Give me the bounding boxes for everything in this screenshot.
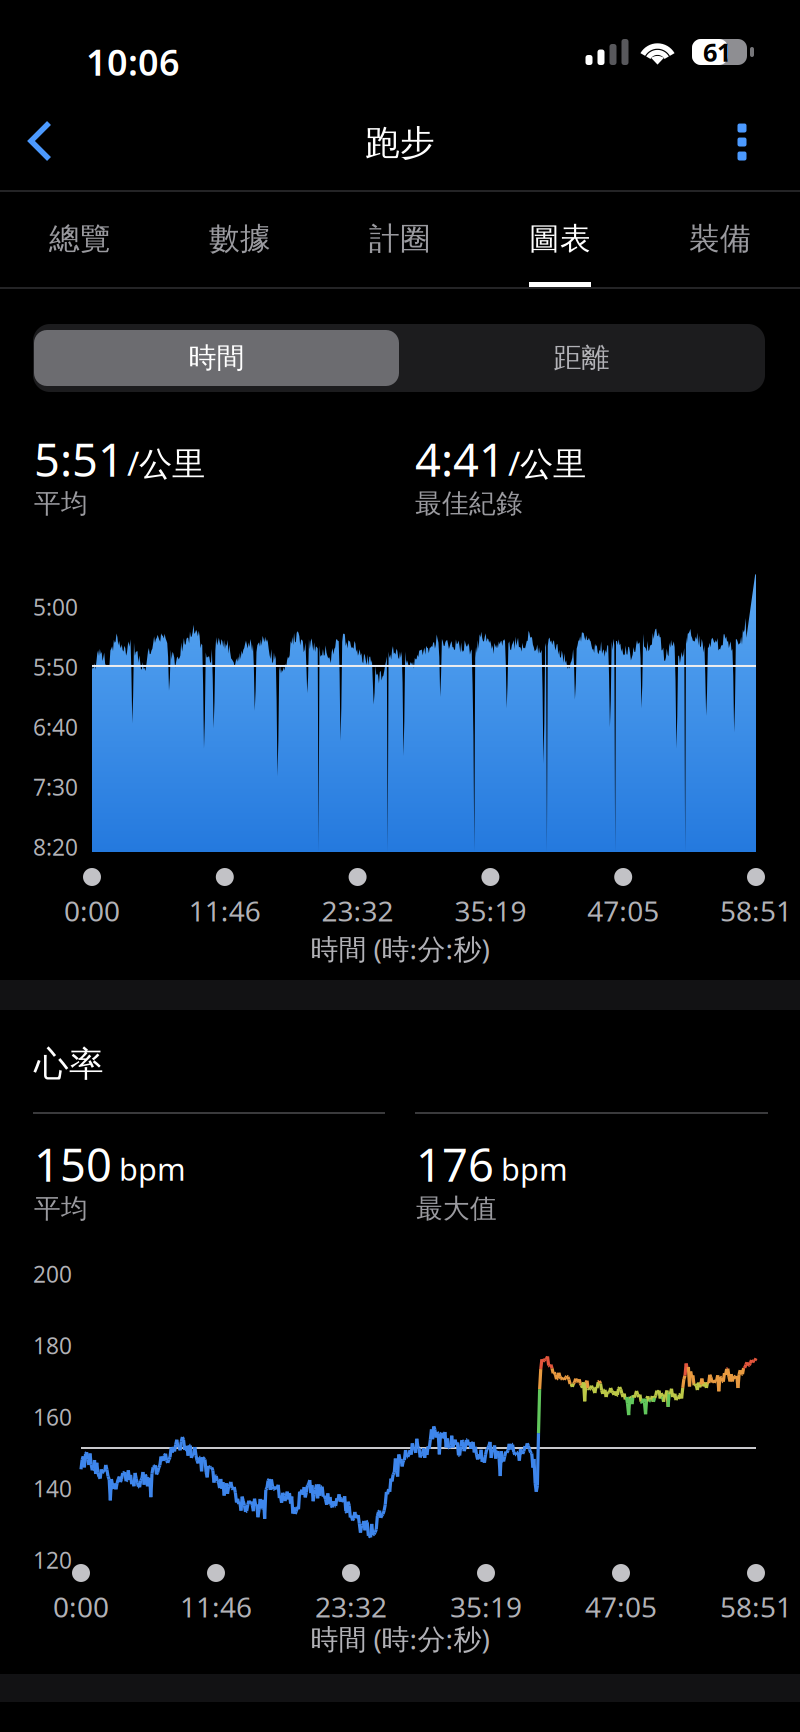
button[interactable]: 更多選項 — [709, 109, 783, 177]
staticText: 時間 (時:分:秒) — [310, 1620, 489, 1657]
staticText: 7:30 — [33, 772, 78, 802]
staticText: 時間 (時:分:秒) — [310, 930, 489, 967]
button[interactable]: 距離 — [399, 330, 764, 386]
staticText: 時間 — [188, 341, 244, 375]
staticText: 平均 — [34, 1192, 88, 1225]
staticText: 總覽 — [49, 220, 111, 258]
staticText: 47:05 — [587, 892, 659, 929]
staticText: bpm — [119, 1148, 186, 1189]
staticText: 裝備 — [689, 220, 751, 258]
button[interactable]: 返回 — [17, 109, 91, 177]
button[interactable]: 圖表 — [480, 192, 640, 287]
staticText: 58:51 — [720, 1588, 792, 1625]
staticText: 4:41 — [415, 429, 505, 489]
button[interactable]: 數據 — [160, 192, 320, 287]
staticText: 35:19 — [450, 1588, 522, 1625]
staticText: 160 — [33, 1402, 72, 1432]
staticText: 58:51 — [720, 892, 792, 929]
staticText: 200 — [33, 1259, 72, 1289]
staticText: 11:46 — [180, 1588, 252, 1625]
staticText: 176 — [416, 1134, 494, 1194]
staticText: 0:00 — [64, 892, 120, 929]
staticText: 11:46 — [189, 892, 261, 929]
staticText: 最大值 — [416, 1192, 497, 1225]
staticText: /公里 — [508, 441, 586, 485]
staticText: 120 — [33, 1545, 72, 1575]
staticText: 6:40 — [33, 712, 78, 742]
staticText: bpm — [501, 1148, 568, 1189]
staticText: 180 — [33, 1330, 72, 1361]
staticText: 140 — [33, 1473, 72, 1504]
staticText: 0:00 — [53, 1588, 109, 1625]
button[interactable]: 總覽 — [0, 192, 160, 287]
staticText: 35:19 — [454, 892, 526, 929]
button[interactable]: 計圈 — [320, 192, 480, 287]
staticText: 圖表 — [529, 220, 591, 258]
staticText: 61 — [703, 35, 731, 69]
staticText: 數據 — [209, 220, 271, 258]
staticText: 5:50 — [33, 652, 78, 682]
staticText: 平均 — [34, 487, 88, 520]
staticText: 計圈 — [369, 220, 431, 258]
staticText: 心率 — [34, 1043, 104, 1086]
button[interactable]: 裝備 — [640, 192, 800, 287]
staticText: 最佳紀錄 — [415, 487, 523, 520]
staticText: 47:05 — [585, 1588, 657, 1625]
button[interactable]: 時間 — [34, 330, 399, 386]
staticText: 23:32 — [315, 1588, 387, 1625]
staticText: 5:00 — [33, 592, 78, 622]
staticText: /公里 — [127, 441, 205, 485]
staticText: 10:06 — [86, 38, 180, 86]
staticText: 23:32 — [322, 892, 394, 929]
staticText: 距離 — [553, 341, 609, 375]
staticText: 150 — [34, 1134, 112, 1194]
staticText: 8:20 — [33, 832, 78, 862]
staticText: 跑步 — [365, 122, 435, 164]
staticText: 5:51 — [34, 429, 124, 489]
